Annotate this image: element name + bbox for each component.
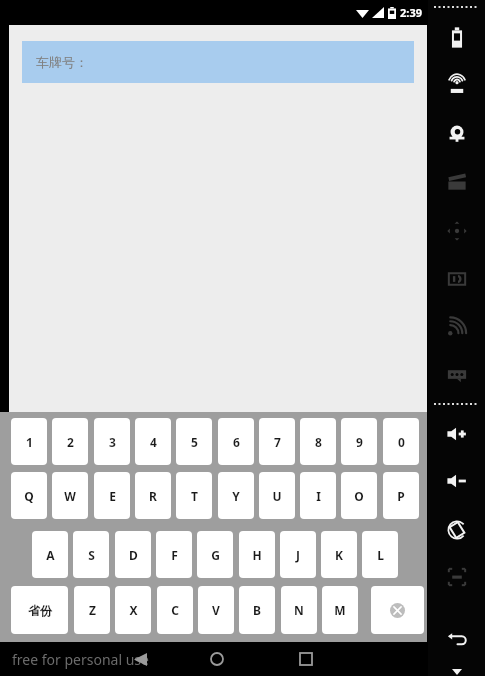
- staticText: 2: [67, 434, 74, 450]
- staticText: free for personal use: [12, 650, 149, 669]
- button[interactable]: 5: [176, 418, 212, 465]
- button[interactable]: 7: [259, 418, 295, 465]
- button[interactable]: 省份: [11, 586, 68, 634]
- button[interactable]: O: [341, 472, 377, 519]
- button[interactable]: Control: [442, 24, 472, 54]
- staticText: 2:39: [400, 5, 422, 20]
- staticText: G: [211, 547, 220, 563]
- staticText: C: [171, 602, 179, 618]
- button[interactable]: Recents: [276, 642, 336, 676]
- staticText: 车牌号：: [36, 54, 88, 70]
- button[interactable]: 车牌号：: [22, 41, 414, 83]
- staticText: L: [377, 547, 384, 563]
- button[interactable]: 3: [94, 418, 130, 465]
- staticText: H: [252, 547, 262, 563]
- button[interactable]: V: [198, 586, 234, 634]
- button[interactable]: J: [280, 531, 316, 578]
- button[interactable]: G: [197, 531, 233, 578]
- staticText: N: [294, 602, 304, 618]
- button[interactable]: T: [176, 472, 212, 519]
- button[interactable]: A: [32, 531, 68, 578]
- button[interactable]: Control: [442, 360, 472, 390]
- staticText: A: [46, 547, 55, 563]
- button[interactable]: K: [321, 531, 357, 578]
- button[interactable]: Home: [187, 642, 247, 676]
- button[interactable]: U: [259, 472, 295, 519]
- button[interactable]: I: [300, 472, 336, 519]
- staticText: D: [129, 547, 138, 563]
- button[interactable]: 2: [52, 418, 88, 465]
- button[interactable]: W: [52, 472, 88, 519]
- button[interactable]: R: [135, 472, 171, 519]
- button[interactable]: Control: [442, 466, 472, 496]
- staticText: Q: [24, 488, 34, 504]
- button[interactable]: Q: [11, 472, 47, 519]
- staticText: W: [64, 488, 76, 504]
- staticText: 7: [274, 434, 281, 450]
- staticText: P: [397, 488, 405, 504]
- staticText: I: [316, 488, 321, 504]
- button[interactable]: H: [239, 531, 275, 578]
- staticText: 9: [356, 434, 363, 450]
- staticText: 5: [191, 434, 198, 450]
- button[interactable]: Control: [442, 216, 472, 246]
- button[interactable]: M: [322, 586, 358, 634]
- staticText: O: [354, 488, 364, 504]
- button[interactable]: Control: [442, 264, 472, 294]
- button[interactable]: Control: [442, 419, 472, 449]
- staticText: 8: [315, 434, 322, 450]
- button[interactable]: 4: [135, 418, 171, 465]
- button[interactable]: X: [115, 586, 151, 634]
- button[interactable]: B: [239, 586, 275, 634]
- staticText: S: [88, 547, 95, 563]
- staticText: T: [191, 488, 198, 504]
- button[interactable]: Control: [442, 167, 472, 197]
- staticText: 0: [398, 434, 405, 450]
- staticText: Z: [89, 602, 96, 618]
- button[interactable]: D: [115, 531, 151, 578]
- button[interactable]: 6: [218, 418, 254, 465]
- button[interactable]: F: [156, 531, 192, 578]
- button[interactable]: Control: [442, 624, 472, 654]
- button[interactable]: C: [157, 586, 193, 634]
- button[interactable]: Control: [442, 515, 472, 545]
- staticText: 省份: [28, 603, 52, 618]
- button[interactable]: L: [362, 531, 398, 578]
- staticText: F: [171, 547, 178, 563]
- staticText: K: [335, 547, 343, 563]
- staticText: R: [149, 488, 157, 504]
- staticText: 6: [233, 434, 240, 450]
- button[interactable]: E: [94, 472, 130, 519]
- staticText: U: [272, 488, 282, 504]
- button[interactable]: Control: [442, 119, 472, 149]
- button[interactable]: P: [383, 472, 419, 519]
- staticText: Y: [232, 488, 240, 504]
- staticText: J: [296, 547, 300, 563]
- staticText: 3: [109, 434, 116, 450]
- button[interactable]: More: [449, 664, 465, 676]
- staticText: V: [212, 602, 220, 618]
- button[interactable]: Control: [442, 562, 472, 592]
- button[interactable]: Delete: [371, 586, 424, 634]
- staticText: M: [334, 602, 346, 618]
- button[interactable]: N: [281, 586, 317, 634]
- button[interactable]: Back: [110, 642, 170, 676]
- button[interactable]: Control: [442, 312, 472, 342]
- button[interactable]: Z: [74, 586, 110, 634]
- button[interactable]: 9: [341, 418, 377, 465]
- staticText: X: [129, 602, 138, 618]
- button[interactable]: 0: [383, 418, 419, 465]
- button[interactable]: 1: [11, 418, 47, 465]
- button[interactable]: Y: [218, 472, 254, 519]
- staticText: B: [253, 602, 261, 618]
- staticText: E: [109, 488, 116, 504]
- button[interactable]: S: [73, 531, 109, 578]
- button[interactable]: 8: [300, 418, 336, 465]
- staticText: 4: [150, 434, 157, 450]
- staticText: 1: [26, 434, 33, 450]
- button[interactable]: Control: [442, 71, 472, 101]
